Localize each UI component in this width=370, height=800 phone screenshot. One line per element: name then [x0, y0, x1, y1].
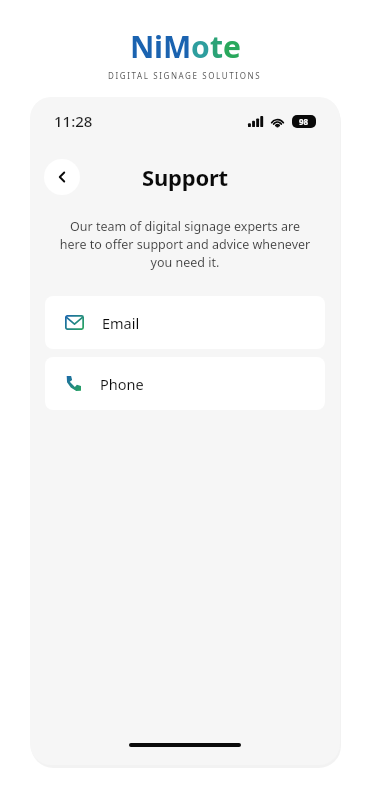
- staticText: Phone: [100, 374, 144, 394]
- staticText: e: [223, 26, 241, 67]
- button[interactable]: Back: [44, 159, 80, 195]
- staticText: 11:28: [54, 111, 93, 131]
- staticText: o: [191, 26, 210, 67]
- staticText: Support: [142, 162, 228, 192]
- staticText: Our team of digital signage experts are …: [58, 218, 312, 271]
- button[interactable]: Phone: [45, 357, 325, 410]
- staticText: i: [154, 26, 163, 67]
- staticText: M: [163, 26, 191, 67]
- staticText: t: [210, 26, 223, 67]
- staticText: DIGITAL SIGNAGE SOLUTIONS: [108, 70, 262, 81]
- staticText: Email: [102, 313, 140, 333]
- staticText: N: [130, 26, 154, 67]
- staticText: 98: [299, 116, 309, 127]
- button[interactable]: Email: [45, 296, 325, 349]
